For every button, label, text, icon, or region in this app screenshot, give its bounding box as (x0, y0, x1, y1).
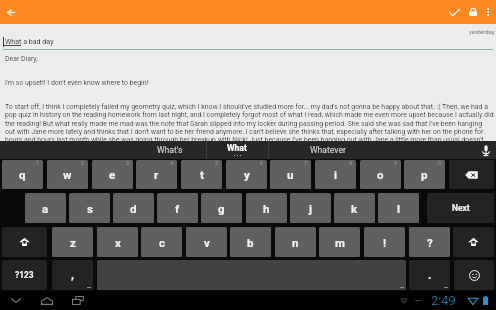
staticText: 1 (36, 160, 40, 166)
button[interactable]: u (270, 160, 311, 189)
staticText: Next (452, 203, 470, 213)
button[interactable]: Hide keyboard (5, 291, 26, 310)
staticText: w (63, 168, 72, 181)
staticText: 2 (81, 160, 85, 166)
button[interactable]: Backspace (449, 160, 494, 189)
button[interactable]: y (226, 160, 267, 189)
staticText: 3 (126, 160, 130, 166)
button[interactable]: r (136, 160, 177, 189)
button[interactable]: c (141, 227, 182, 257)
button[interactable]: Emoji (454, 260, 494, 290)
staticText: 6 (260, 160, 264, 166)
staticText: the reading! But what really made me mad… (5, 120, 483, 128)
staticText: b (247, 236, 254, 249)
staticText: , (71, 268, 74, 282)
staticText: e (109, 168, 116, 181)
button[interactable]: w (47, 160, 88, 189)
staticText: yesterday (469, 28, 495, 35)
staticText: r (154, 168, 159, 181)
staticText: 8 (349, 160, 353, 166)
staticText: j (309, 202, 312, 215)
button[interactable]: . (409, 260, 450, 290)
button[interactable]: j (290, 193, 331, 223)
button[interactable]: Lock (462, 0, 484, 24)
staticText: . (428, 268, 432, 282)
staticText: pop quiz in history on the reading homew… (5, 111, 494, 119)
button[interactable]: Recent apps (67, 291, 88, 310)
staticText: What (227, 143, 247, 153)
button[interactable]: s (69, 193, 110, 223)
button[interactable]: o (360, 160, 401, 189)
staticText: d (130, 202, 137, 215)
staticText: a (42, 202, 49, 215)
staticText: What's (157, 145, 183, 155)
button[interactable]: Voice input (476, 141, 495, 159)
button[interactable]: ! (364, 227, 405, 257)
button[interactable]: What's (139, 141, 200, 159)
staticText: s (87, 202, 93, 215)
staticText: i (334, 168, 338, 181)
staticText: o (377, 168, 384, 181)
button[interactable]: Whatever (296, 141, 359, 159)
staticText: t (200, 168, 204, 181)
button[interactable]: Home (36, 291, 57, 310)
button[interactable]: t (181, 160, 222, 189)
button[interactable]: Shift (453, 227, 494, 257)
staticText: 0 (438, 160, 442, 166)
staticText: c (159, 236, 165, 249)
staticText: ? (427, 236, 433, 249)
button[interactable]: n (275, 227, 316, 257)
staticText: u (287, 168, 294, 181)
staticText: ! (383, 236, 387, 249)
staticText: I'm so upset!! I don't even know where t… (5, 79, 149, 87)
staticText: q (19, 168, 26, 181)
button[interactable]: e (92, 160, 133, 189)
button[interactable]: Back (0, 0, 22, 24)
button[interactable]: b (230, 227, 271, 257)
staticText: To start off, I think I completely faile… (5, 103, 488, 111)
staticText: g (218, 202, 225, 215)
button[interactable]: k (334, 193, 375, 223)
staticText: k (351, 202, 358, 215)
staticText: z (70, 236, 76, 249)
staticText: x (115, 236, 121, 249)
staticText: 7 (304, 160, 308, 166)
button[interactable]: h (246, 193, 287, 223)
staticText: 5 (215, 160, 219, 166)
button[interactable]: f (157, 193, 198, 223)
staticText: Whatever (310, 145, 346, 155)
button[interactable]: Done (443, 0, 465, 24)
button[interactable]: z (52, 227, 93, 257)
button[interactable]: l (378, 193, 419, 223)
button[interactable]: What (207, 141, 267, 159)
button[interactable]: q (2, 160, 43, 189)
button[interactable]: , (52, 260, 93, 290)
button[interactable]: g (201, 193, 242, 223)
button[interactable]: v (186, 227, 227, 257)
staticText: f (175, 202, 180, 215)
button[interactable]: ? (409, 227, 450, 257)
button[interactable]: x (97, 227, 138, 257)
button[interactable]: Shift (2, 227, 47, 257)
button[interactable]: a (25, 193, 66, 223)
staticText: n (292, 236, 299, 249)
button[interactable]: d (113, 193, 154, 223)
staticText: y (244, 168, 250, 181)
staticText: ?123 (15, 270, 34, 280)
staticText: Dear Diary, (5, 55, 38, 63)
staticText: l (397, 202, 401, 215)
staticText: h (263, 202, 270, 215)
button[interactable]: More options (480, 0, 496, 24)
staticText: 2:49 (431, 293, 456, 308)
staticText: m (335, 236, 345, 249)
staticText: out with Jane more lately and thinks tha… (5, 128, 484, 136)
button[interactable]: Next (427, 193, 494, 223)
button[interactable]: ?123 (2, 260, 47, 290)
staticText: v (204, 236, 210, 249)
button[interactable]: m (319, 227, 360, 257)
staticText: p (421, 168, 428, 181)
staticText: 9 (394, 160, 398, 166)
button[interactable]: p (404, 160, 445, 189)
button[interactable]: i (315, 160, 356, 189)
